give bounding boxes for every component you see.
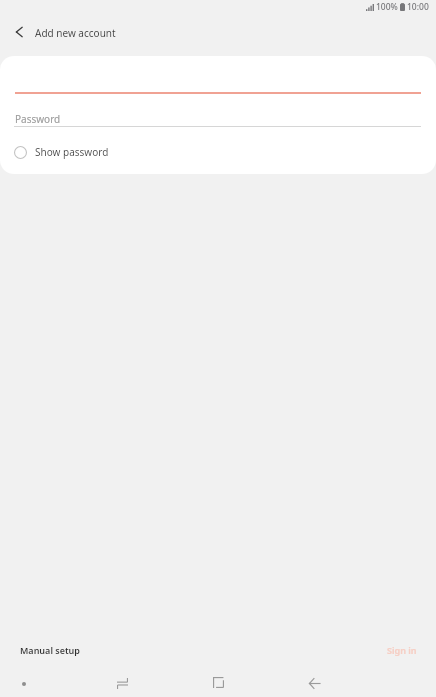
button[interactable]: Show keyboard xyxy=(8,671,40,697)
staticText: Sign in xyxy=(387,644,417,656)
staticText: Manual setup xyxy=(20,644,80,656)
button[interactable]: Email address xyxy=(15,64,421,94)
staticText: Add new account xyxy=(35,26,116,40)
button[interactable]: Manual setup xyxy=(0,638,90,662)
button[interactable]: Show password xyxy=(0,139,436,165)
staticText: Show password xyxy=(35,145,109,159)
staticText: Password xyxy=(15,112,61,126)
staticText: 100% xyxy=(376,1,398,13)
button[interactable]: Home xyxy=(202,669,234,695)
button[interactable]: Back xyxy=(298,670,330,696)
button[interactable]: Navigate up xyxy=(5,18,33,46)
button[interactable]: Sign in xyxy=(377,638,436,662)
button[interactable]: Password xyxy=(14,106,421,127)
button[interactable]: Recent apps xyxy=(106,670,138,696)
staticText: 10:00 xyxy=(407,1,429,13)
